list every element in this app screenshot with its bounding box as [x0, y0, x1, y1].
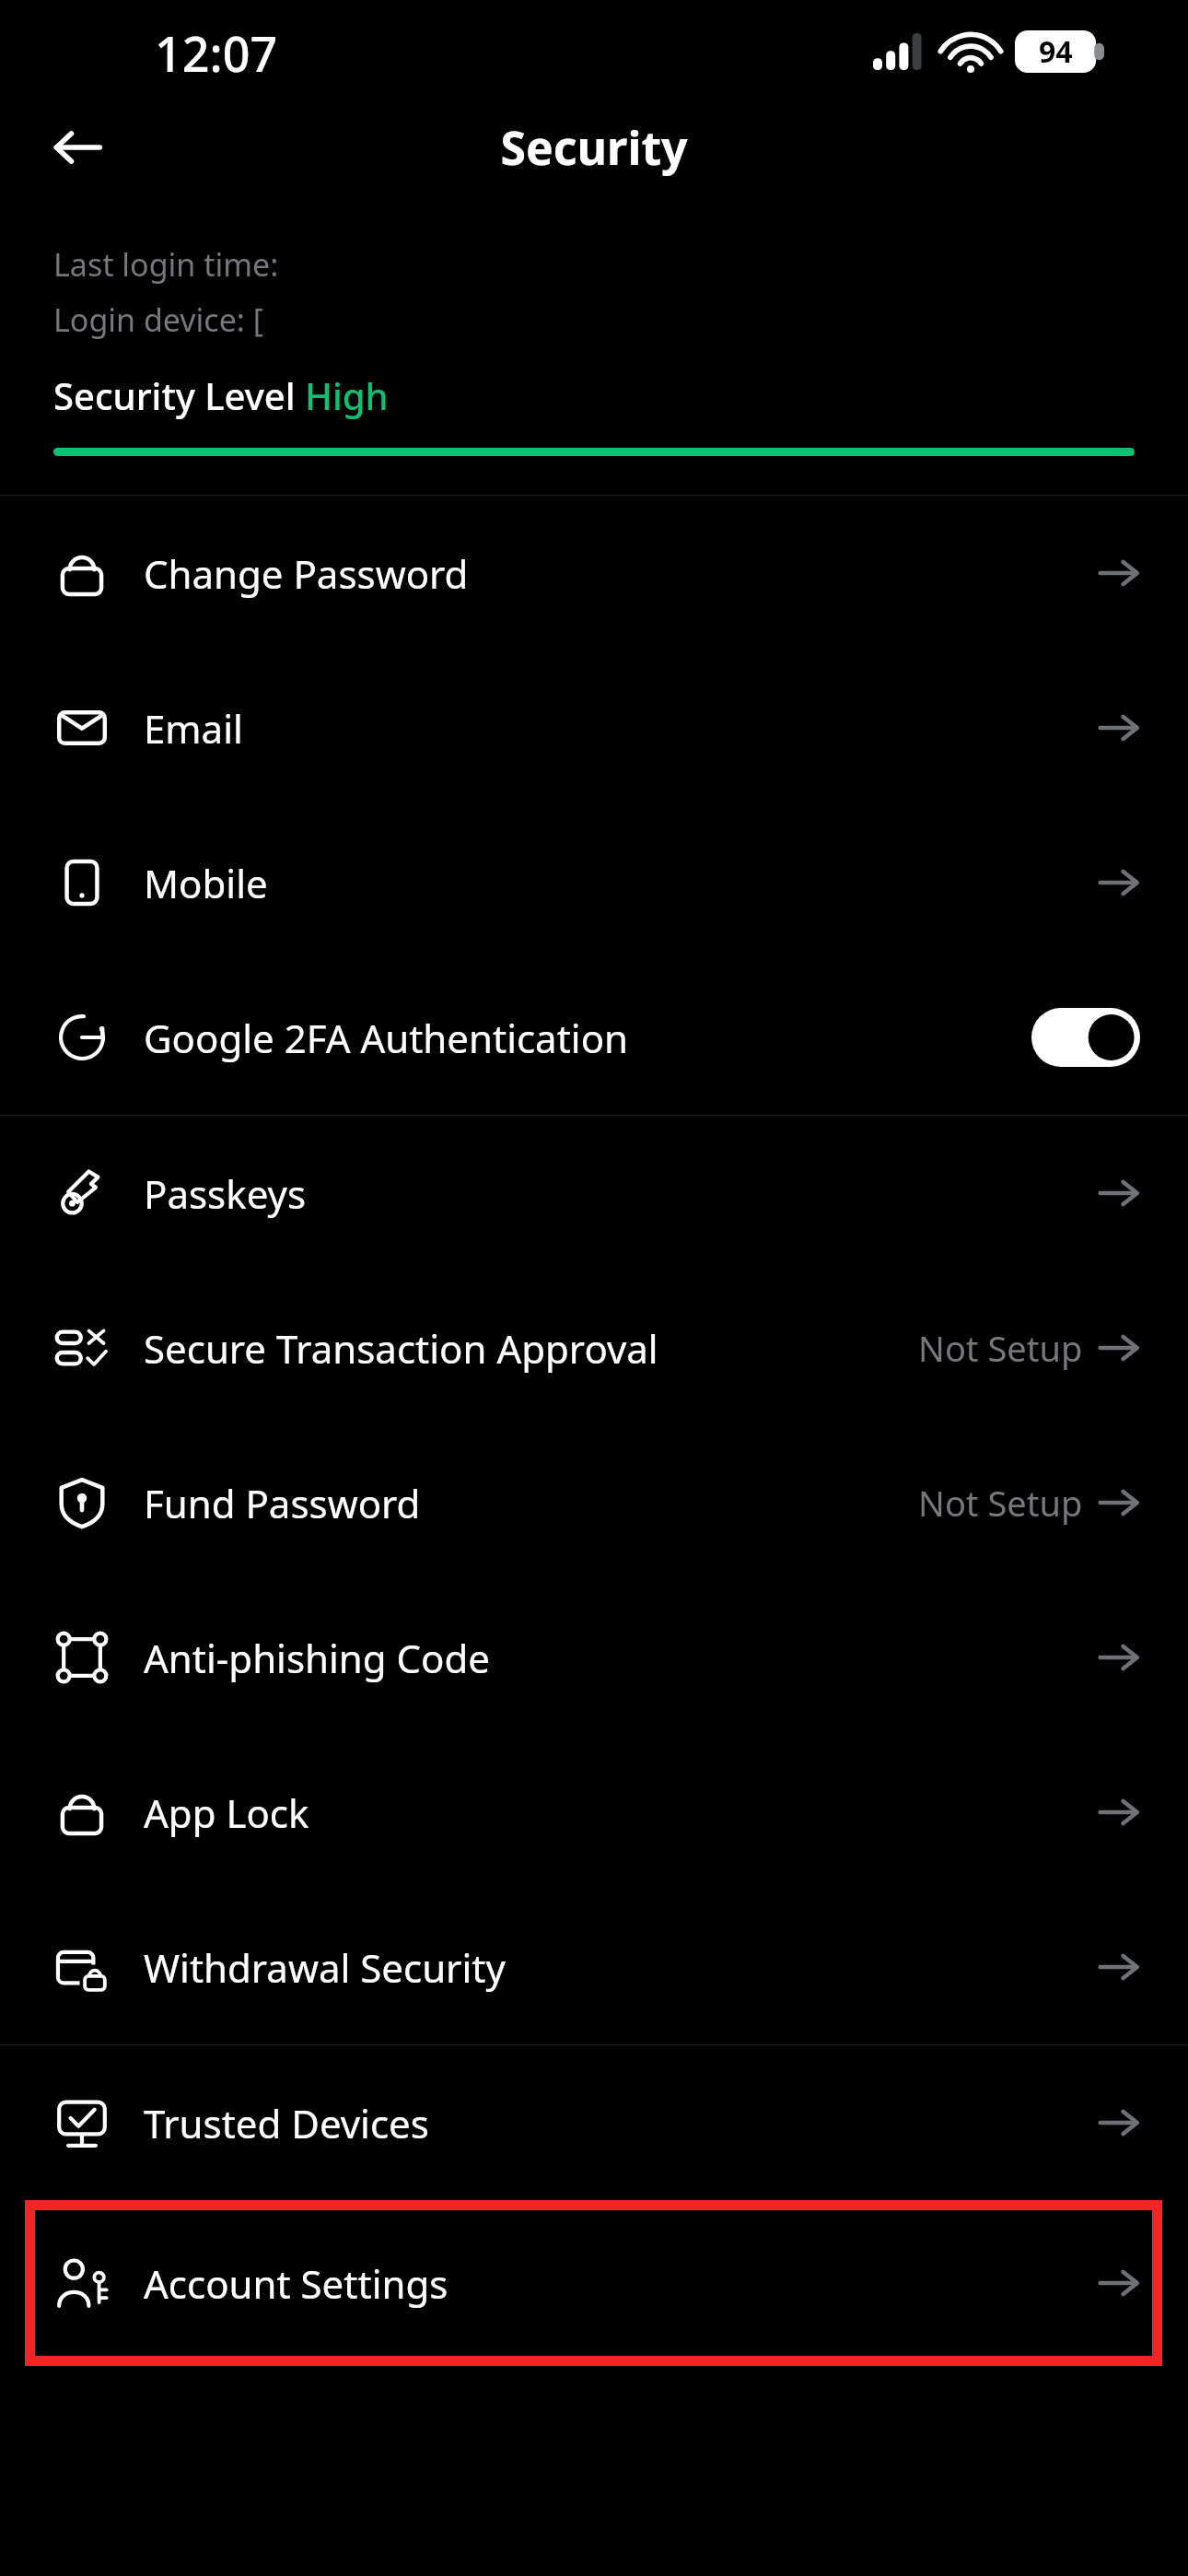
- button[interactable]: Withdrawal Security: [0, 1890, 1188, 2044]
- staticText: Security: [500, 116, 688, 179]
- staticText: Mobile: [144, 857, 1098, 909]
- button[interactable]: App Lock: [0, 1735, 1188, 1890]
- staticText: Secure Transaction Approval: [144, 1322, 918, 1375]
- staticText: Passkeys: [144, 1167, 1098, 1220]
- staticText: Anti-phishing Code: [144, 1632, 1098, 1684]
- staticText: Last login time:: [53, 243, 279, 286]
- staticText: Change Password: [144, 547, 1098, 600]
- staticText: 94: [1039, 31, 1073, 72]
- staticText: Security Level: [53, 370, 305, 420]
- staticText: High: [305, 370, 389, 420]
- button[interactable]: Google 2FA Authentication: [0, 960, 1188, 1115]
- staticText: Login device: [: [53, 299, 264, 341]
- staticText: Email: [144, 702, 1098, 755]
- staticText: Account Settings: [144, 2257, 1098, 2310]
- button[interactable]: Trusted Devices: [0, 2045, 1188, 2200]
- staticText: Fund Password: [144, 1477, 918, 1529]
- button[interactable]: Change Password: [0, 496, 1188, 650]
- button[interactable]: Fund Password: [0, 1425, 1188, 1580]
- button[interactable]: Account Settings: [25, 2200, 1162, 2366]
- staticText: 12:07: [155, 20, 278, 86]
- button[interactable]: Back: [37, 107, 118, 188]
- button[interactable]: Mobile: [0, 805, 1188, 960]
- staticText: App Lock: [144, 1786, 1098, 1839]
- staticText: Not Setup: [918, 1479, 1083, 1527]
- button[interactable]: Anti-phishing Code: [0, 1580, 1188, 1735]
- staticText: Trusted Devices: [144, 2097, 1098, 2149]
- staticText: Withdrawal Security: [144, 1941, 1098, 1994]
- button[interactable]: Google 2FA toggle: [1031, 1008, 1140, 1067]
- staticText: Not Setup: [918, 1324, 1083, 1372]
- button[interactable]: Passkeys: [0, 1116, 1188, 1270]
- button[interactable]: Secure Transaction Approval: [0, 1270, 1188, 1425]
- button[interactable]: Email: [0, 650, 1188, 805]
- staticText: Google 2FA Authentication: [144, 1012, 1031, 1064]
